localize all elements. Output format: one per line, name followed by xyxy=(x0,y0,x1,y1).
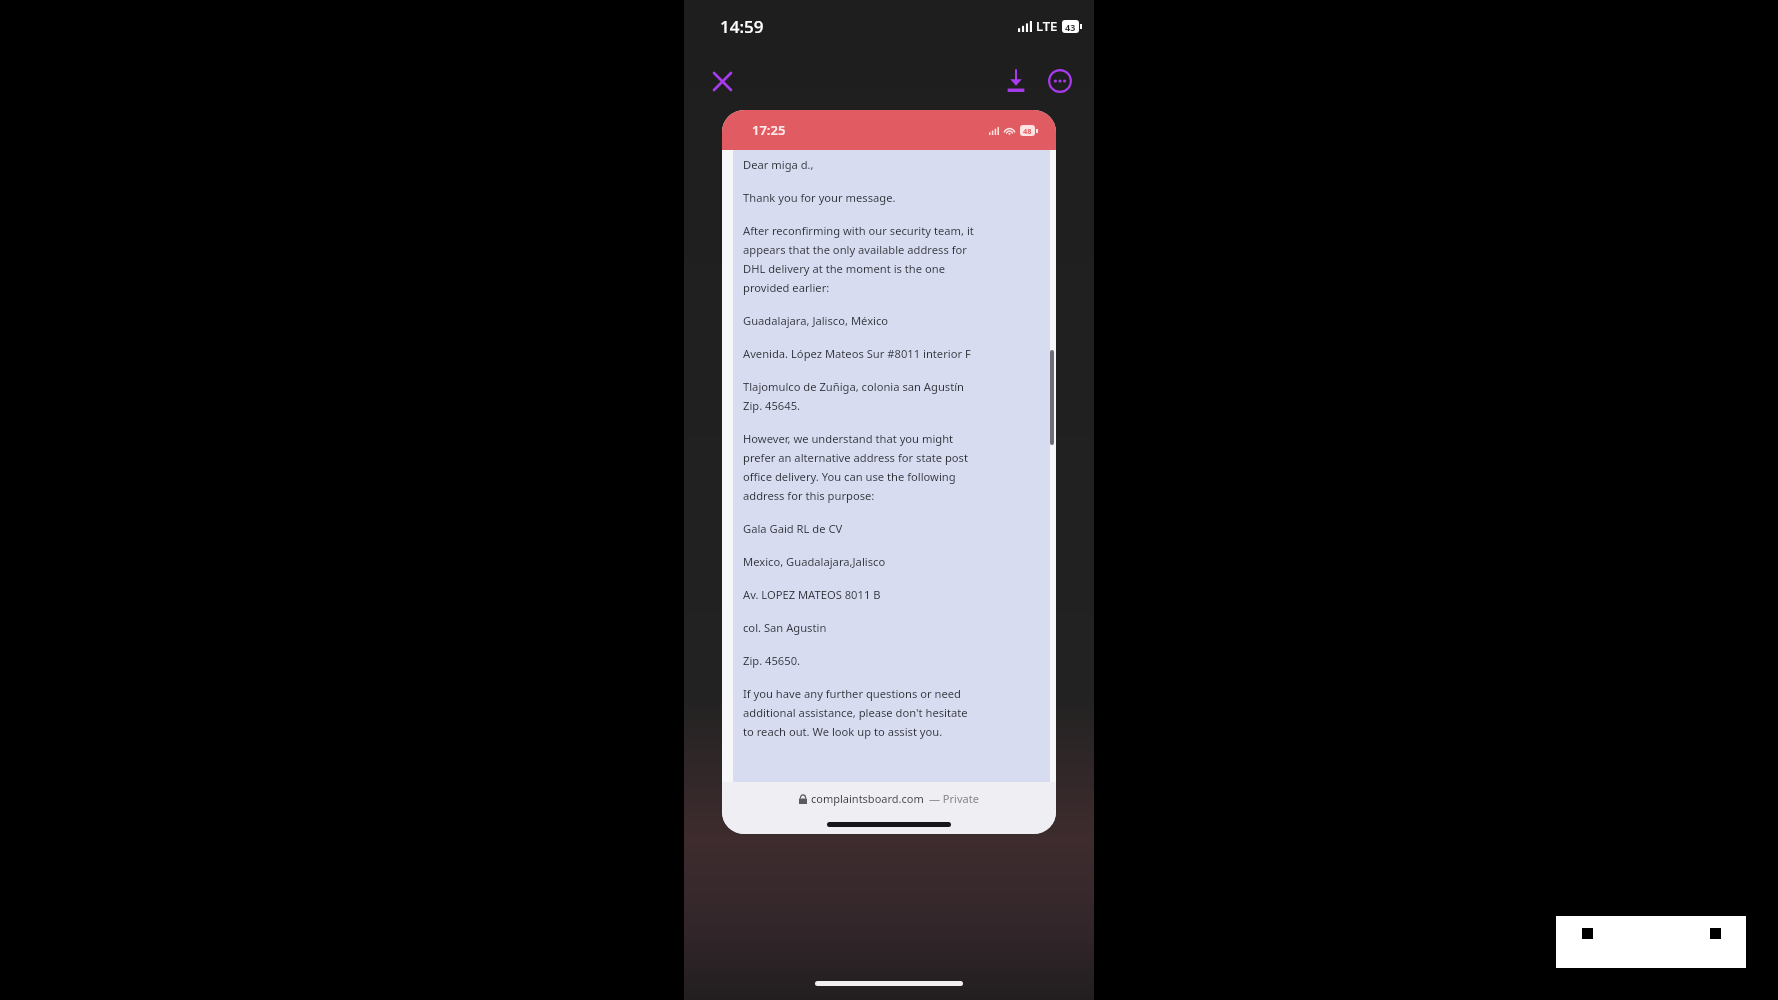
staticText: If you have any further questions or nee… xyxy=(743,686,968,739)
button[interactable]: complaintsboard.com xyxy=(799,791,979,806)
staticText: 48 xyxy=(1023,126,1032,136)
button[interactable]: Close xyxy=(700,59,744,103)
staticText: Thank you for your message. xyxy=(743,190,896,205)
button[interactable]: More options xyxy=(1038,59,1082,103)
staticText: Avenida. López Mateos Sur #8011 interior… xyxy=(743,346,971,361)
staticText: 17:25 xyxy=(752,121,786,139)
staticText: After reconfirming with our security tea… xyxy=(743,223,974,295)
staticText: 14:59 xyxy=(720,15,764,38)
staticText: complaintsboard.com xyxy=(811,791,924,806)
staticText: Av. LOPEZ MATEOS 8011 B xyxy=(743,587,881,602)
staticText: Guadalajara, Jalisco, México xyxy=(743,313,889,328)
staticText: LTE xyxy=(1036,17,1058,35)
button[interactable]: Download xyxy=(994,59,1038,103)
staticText: However, we understand that you might pr… xyxy=(743,431,969,503)
staticText: col. San Agustin xyxy=(743,620,827,635)
staticText: — Private xyxy=(929,791,979,806)
staticText: 43 xyxy=(1065,21,1076,33)
staticText: Zip. 45650. xyxy=(743,653,801,668)
staticText: Mexico, Guadalajara,Jalisco xyxy=(743,554,886,569)
staticText: Tlajomulco de Zuñiga, colonia san Agustí… xyxy=(743,379,964,413)
staticText: Gala Gaid RL de CV xyxy=(743,521,843,536)
staticText: Dear miga d., xyxy=(743,157,814,172)
